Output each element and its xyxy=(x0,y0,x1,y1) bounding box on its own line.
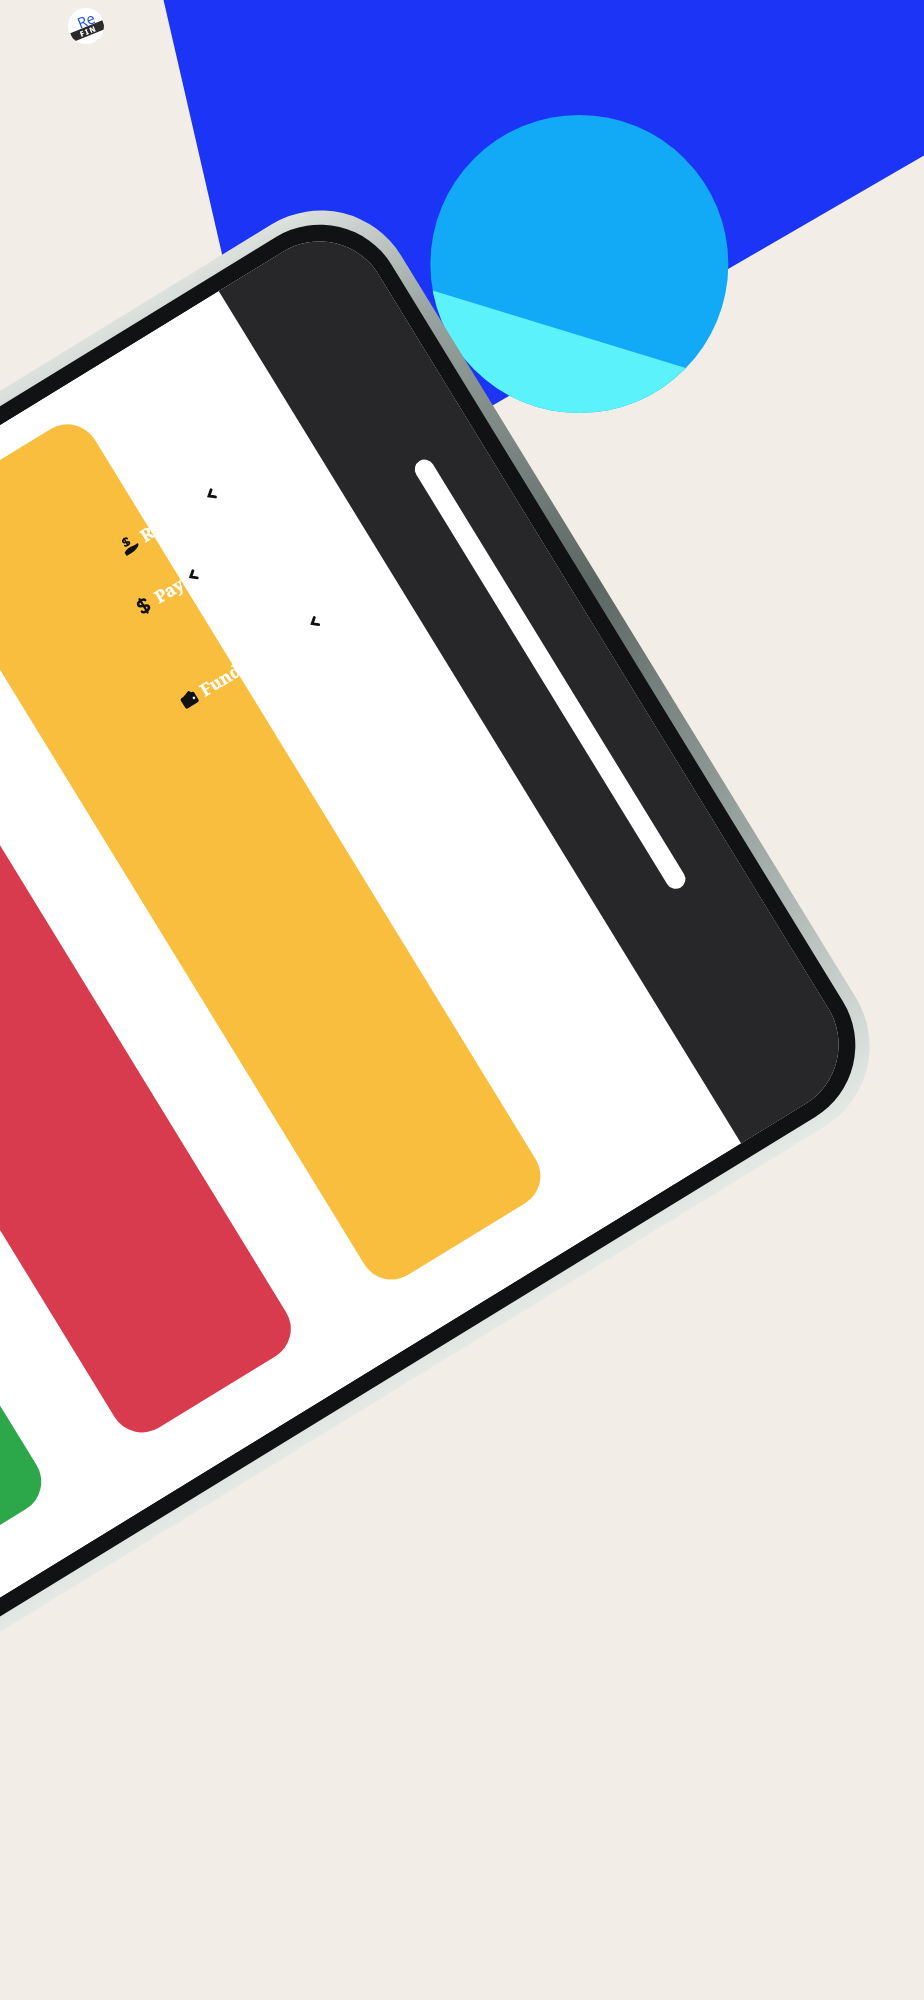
button[interactable]: ReFIN logo xyxy=(68,8,104,44)
button[interactable]: Request xyxy=(114,481,224,560)
staticText: Re xyxy=(74,8,98,33)
staticText: F I N xyxy=(79,24,97,40)
staticText: Request xyxy=(136,491,206,547)
staticText: Fund Account xyxy=(195,619,310,701)
button[interactable]: Fund Account xyxy=(174,609,327,714)
button[interactable]: Pay xyxy=(129,562,205,621)
staticText: Pay xyxy=(150,572,188,608)
